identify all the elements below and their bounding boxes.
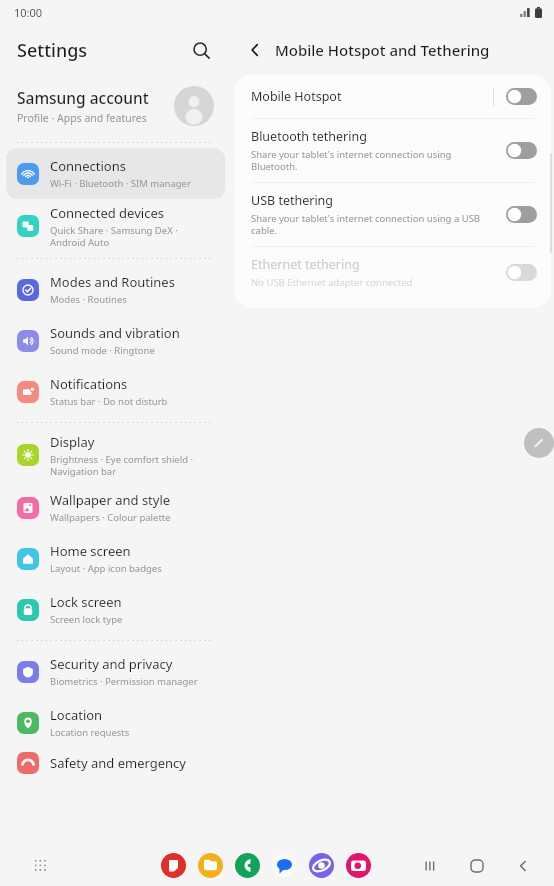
button[interactable]: Connected devices [6,199,225,253]
button[interactable]: cam [346,853,371,878]
staticText: Profile · Apps and features [17,111,147,125]
button[interactable]: Sounds and vibration [6,315,225,366]
button[interactable]: Search [184,33,218,67]
button[interactable]: Mobile Hotspot [234,75,551,118]
staticText: USB tethering [251,192,334,209]
button[interactable]: Notifications [6,366,225,417]
staticText: Display [50,433,95,451]
button[interactable]: Modes and Routines [6,264,225,315]
button[interactable]: Recents [414,849,448,883]
staticText: Safety and emergency [50,754,186,772]
staticText: Settings [17,38,88,63]
button[interactable]: phone [235,853,260,878]
staticText: No USB Ethernet adapter connected [251,276,413,289]
staticText: Layout · App icon badges [50,562,162,575]
staticText: Ethernet tethering [251,256,360,273]
button[interactable]: Back [506,849,540,883]
button[interactable]: Toggle [506,264,537,281]
button[interactable]: Ethernet tethering [234,247,551,298]
staticText: Brightness · Eye comfort shield · Naviga… [50,453,194,478]
button[interactable]: Lock screen [6,584,225,635]
button[interactable]: Toggle [506,88,537,105]
button[interactable]: Bluetooth tethering [234,119,551,182]
button[interactable]: Location [6,697,225,748]
staticText: Sounds and vibration [50,324,180,342]
button[interactable]: Back [239,34,271,66]
button[interactable]: net [309,853,334,878]
staticText: Biometrics · Permission manager [50,675,198,688]
staticText: Status bar · Do not disturb [50,395,168,408]
button[interactable]: Edit [524,428,554,458]
button[interactable]: Samsung account [0,75,231,137]
staticText: Sound mode · Ringtone [50,344,155,357]
staticText: Connected devices [50,204,164,222]
staticText: Lock screen [50,593,122,611]
staticText: Wi-Fi · Bluetooth · SIM manager [50,177,191,190]
staticText: Share your tablet's internet connection … [251,148,496,173]
staticText: Bluetooth tethering [251,128,367,145]
staticText: Mobile Hotspot [251,88,342,105]
staticText: Wallpapers · Colour palette [50,511,171,524]
staticText: 10:00 [14,5,43,20]
button[interactable]: msg [272,853,297,878]
button[interactable]: Connections [6,148,225,199]
staticText: Modes and Routines [50,273,175,291]
button[interactable]: Home [460,849,494,883]
button[interactable]: Home screen [6,533,225,584]
staticText: Location [50,706,103,724]
staticText: Notifications [50,375,128,393]
staticText: Screen lock type [50,613,123,626]
staticText: Share your tablet's internet connection … [251,212,481,237]
button[interactable]: Safety and emergency [6,748,225,778]
staticText: Location requests [50,726,130,739]
button[interactable]: Toggle [506,206,537,223]
button[interactable]: files [198,853,223,878]
button[interactable]: Wallpaper and style [6,482,225,533]
staticText: Security and privacy [50,655,173,673]
button[interactable]: play [161,853,186,878]
button[interactable]: USB tethering [234,183,551,246]
staticText: Home screen [50,542,131,560]
button[interactable]: Display [6,428,225,482]
staticText: Mobile Hotspot and Tethering [275,40,490,60]
staticText: Connections [50,157,126,175]
staticText: Samsung account [17,87,149,108]
button[interactable]: Toggle [506,142,537,159]
staticText: Modes · Routines [50,293,127,306]
button[interactable]: Apps [28,853,54,879]
staticText: Quick Share · Samsung DeX · Android Auto [50,224,178,249]
staticText: Wallpaper and style [50,491,171,509]
button[interactable]: Security and privacy [6,646,225,697]
